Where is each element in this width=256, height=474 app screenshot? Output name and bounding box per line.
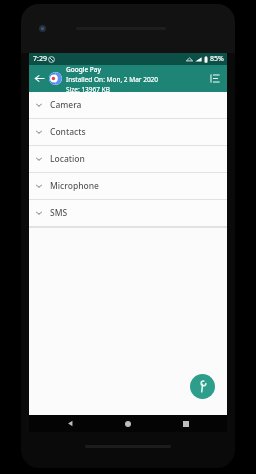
staticText: Location [50, 153, 85, 165]
button[interactable]: Settings [190, 374, 215, 399]
staticText: Google Pay [66, 65, 101, 74]
button[interactable]: Location [29, 146, 227, 172]
button[interactable]: Microphone [29, 173, 227, 199]
staticText: SMS [50, 207, 68, 219]
button[interactable]: Contacts [29, 119, 227, 145]
button[interactable]: Back [29, 65, 49, 92]
button[interactable]: Back [53, 415, 87, 432]
button[interactable]: Home [111, 415, 145, 432]
staticText: Contacts [50, 126, 86, 138]
staticText: Size: 13967 KB [66, 85, 110, 92]
staticText: Installed On: Mon, 2 Mar 2020 [66, 75, 159, 84]
button[interactable]: Recent apps [169, 415, 203, 432]
button[interactable]: Camera [29, 92, 227, 118]
staticText: Microphone [50, 180, 99, 192]
staticText: 7:29 [33, 54, 47, 64]
staticText: Camera [50, 99, 82, 111]
button[interactable]: SMS [29, 200, 227, 226]
button[interactable]: Sort list [203, 65, 227, 92]
staticText: 85% [210, 54, 224, 64]
